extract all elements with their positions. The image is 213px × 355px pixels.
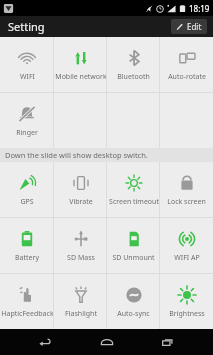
staticText: Brightness: [169, 309, 205, 319]
staticText: Flashlight: [65, 309, 97, 319]
button[interactable]: Auto-sync: [107, 274, 160, 329]
staticText: Ringer: [16, 128, 38, 138]
button[interactable]: HapticFeedback: [0, 274, 54, 329]
button[interactable]: Auto-rotate: [160, 37, 213, 92]
button[interactable]: Back: [28, 329, 62, 355]
button[interactable]: SD Unmount: [107, 218, 160, 273]
button[interactable]: Battery: [0, 218, 54, 273]
button[interactable]: Brightness: [160, 274, 213, 329]
staticText: SD Mass: [67, 253, 95, 263]
button[interactable]: Screen timeout: [107, 162, 160, 217]
staticText: Auto-rotate: [168, 72, 206, 82]
staticText: GPS: [20, 197, 34, 207]
staticText: WIFI AP: [174, 253, 200, 263]
staticText: Bluetooth: [117, 72, 150, 82]
button[interactable]: SD Mass: [54, 218, 107, 273]
button[interactable]: Flashlight: [54, 274, 107, 329]
button[interactable]: WIFI AP: [160, 218, 213, 273]
button[interactable]: Recent apps: [151, 329, 185, 355]
staticText: Down the slide will show desktop switch.: [5, 150, 148, 160]
button[interactable]: Vibrate: [54, 162, 107, 217]
staticText: SD Unmount: [112, 253, 155, 263]
staticText: WIFI: [20, 72, 35, 82]
button[interactable]: Ringer: [0, 93, 54, 148]
staticText: Auto-sync: [117, 309, 150, 319]
staticText: Edit: [187, 21, 202, 32]
staticText: Screen timeout: [109, 197, 159, 207]
button[interactable]: Bluetooth: [107, 37, 160, 92]
button[interactable]: Home: [90, 329, 124, 355]
staticText: Lock screen: [167, 197, 206, 207]
button[interactable]: WIFI: [0, 37, 54, 92]
staticText: Setting: [8, 19, 45, 34]
staticText: Battery: [15, 253, 39, 263]
staticText: Mobile network: [55, 72, 107, 82]
button[interactable]: Lock screen: [160, 162, 213, 217]
staticText: Vibrate: [69, 197, 93, 207]
staticText: HapticFeedback: [1, 309, 54, 319]
button[interactable]: GPS: [0, 162, 54, 217]
staticText: 18:19: [189, 3, 210, 14]
button[interactable]: Edit: [171, 19, 207, 34]
button[interactable]: Mobile network: [54, 37, 107, 92]
